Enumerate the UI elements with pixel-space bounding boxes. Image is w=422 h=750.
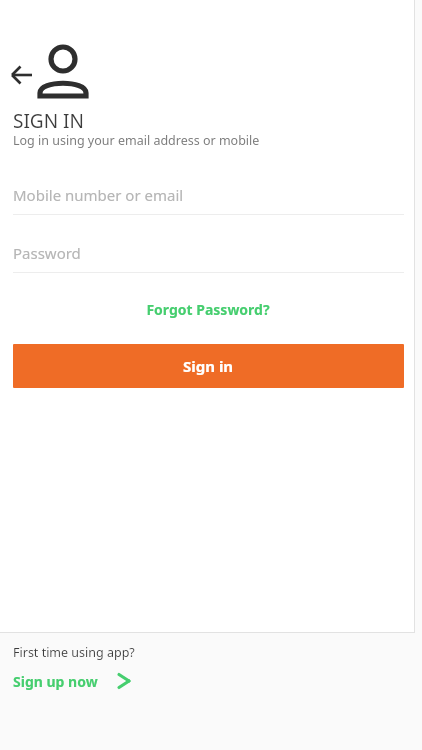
staticText: Log in using your email address or mobil… <box>13 132 260 149</box>
staticText: SIGN IN <box>13 108 84 134</box>
staticText: Password <box>13 243 81 263</box>
button[interactable]: Password <box>13 234 404 272</box>
button[interactable]: Sign in <box>13 344 404 388</box>
staticText: First time using app? <box>13 644 135 661</box>
button[interactable]: Sign up now <box>8 668 137 694</box>
staticText: Sign up now <box>13 672 98 691</box>
staticText: Forgot Password? <box>146 300 270 319</box>
button[interactable]: Back <box>4 54 40 90</box>
button[interactable]: Mobile number or email <box>13 176 404 214</box>
staticText: Sign in <box>183 356 234 376</box>
button[interactable]: Forgot Password? <box>140 297 276 322</box>
staticText: Mobile number or email <box>13 185 184 205</box>
